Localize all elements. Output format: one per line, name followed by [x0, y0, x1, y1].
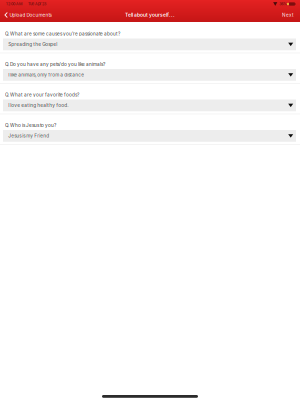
staticText: Q. What are some causes you're passionat…	[5, 31, 120, 36]
staticText: Q. Do you have any pets/do you like anim…	[5, 61, 105, 67]
button[interactable]: Jesus is my Friend	[0, 130, 300, 142]
button[interactable]: Next	[282, 10, 300, 20]
staticText: Q. Who is Jesus to you?	[5, 122, 56, 128]
button[interactable]: Upload Documents	[0, 10, 51, 20]
staticText: 36%	[279, 2, 287, 6]
staticText: 12:00 AM	[6, 2, 22, 6]
button[interactable]: I like animals, only from a distance	[0, 69, 300, 81]
button[interactable]: Spreading the Gospel	[0, 38, 300, 50]
button[interactable]: I love eating healthy food.	[0, 99, 300, 111]
staticText: Q. What are your favorite foods?	[5, 92, 79, 97]
staticText: Next	[282, 12, 294, 18]
staticText: Jesus is my Friend	[8, 133, 49, 139]
staticText: I love eating healthy food.	[8, 103, 68, 108]
staticText: Upload Documents	[9, 12, 51, 18]
staticText: Tue Apr 23	[28, 2, 46, 6]
staticText: Spreading the Gospel	[8, 42, 57, 47]
staticText: I like animals, only from a distance	[8, 72, 84, 78]
staticText: Tell about yourself...	[125, 12, 175, 18]
